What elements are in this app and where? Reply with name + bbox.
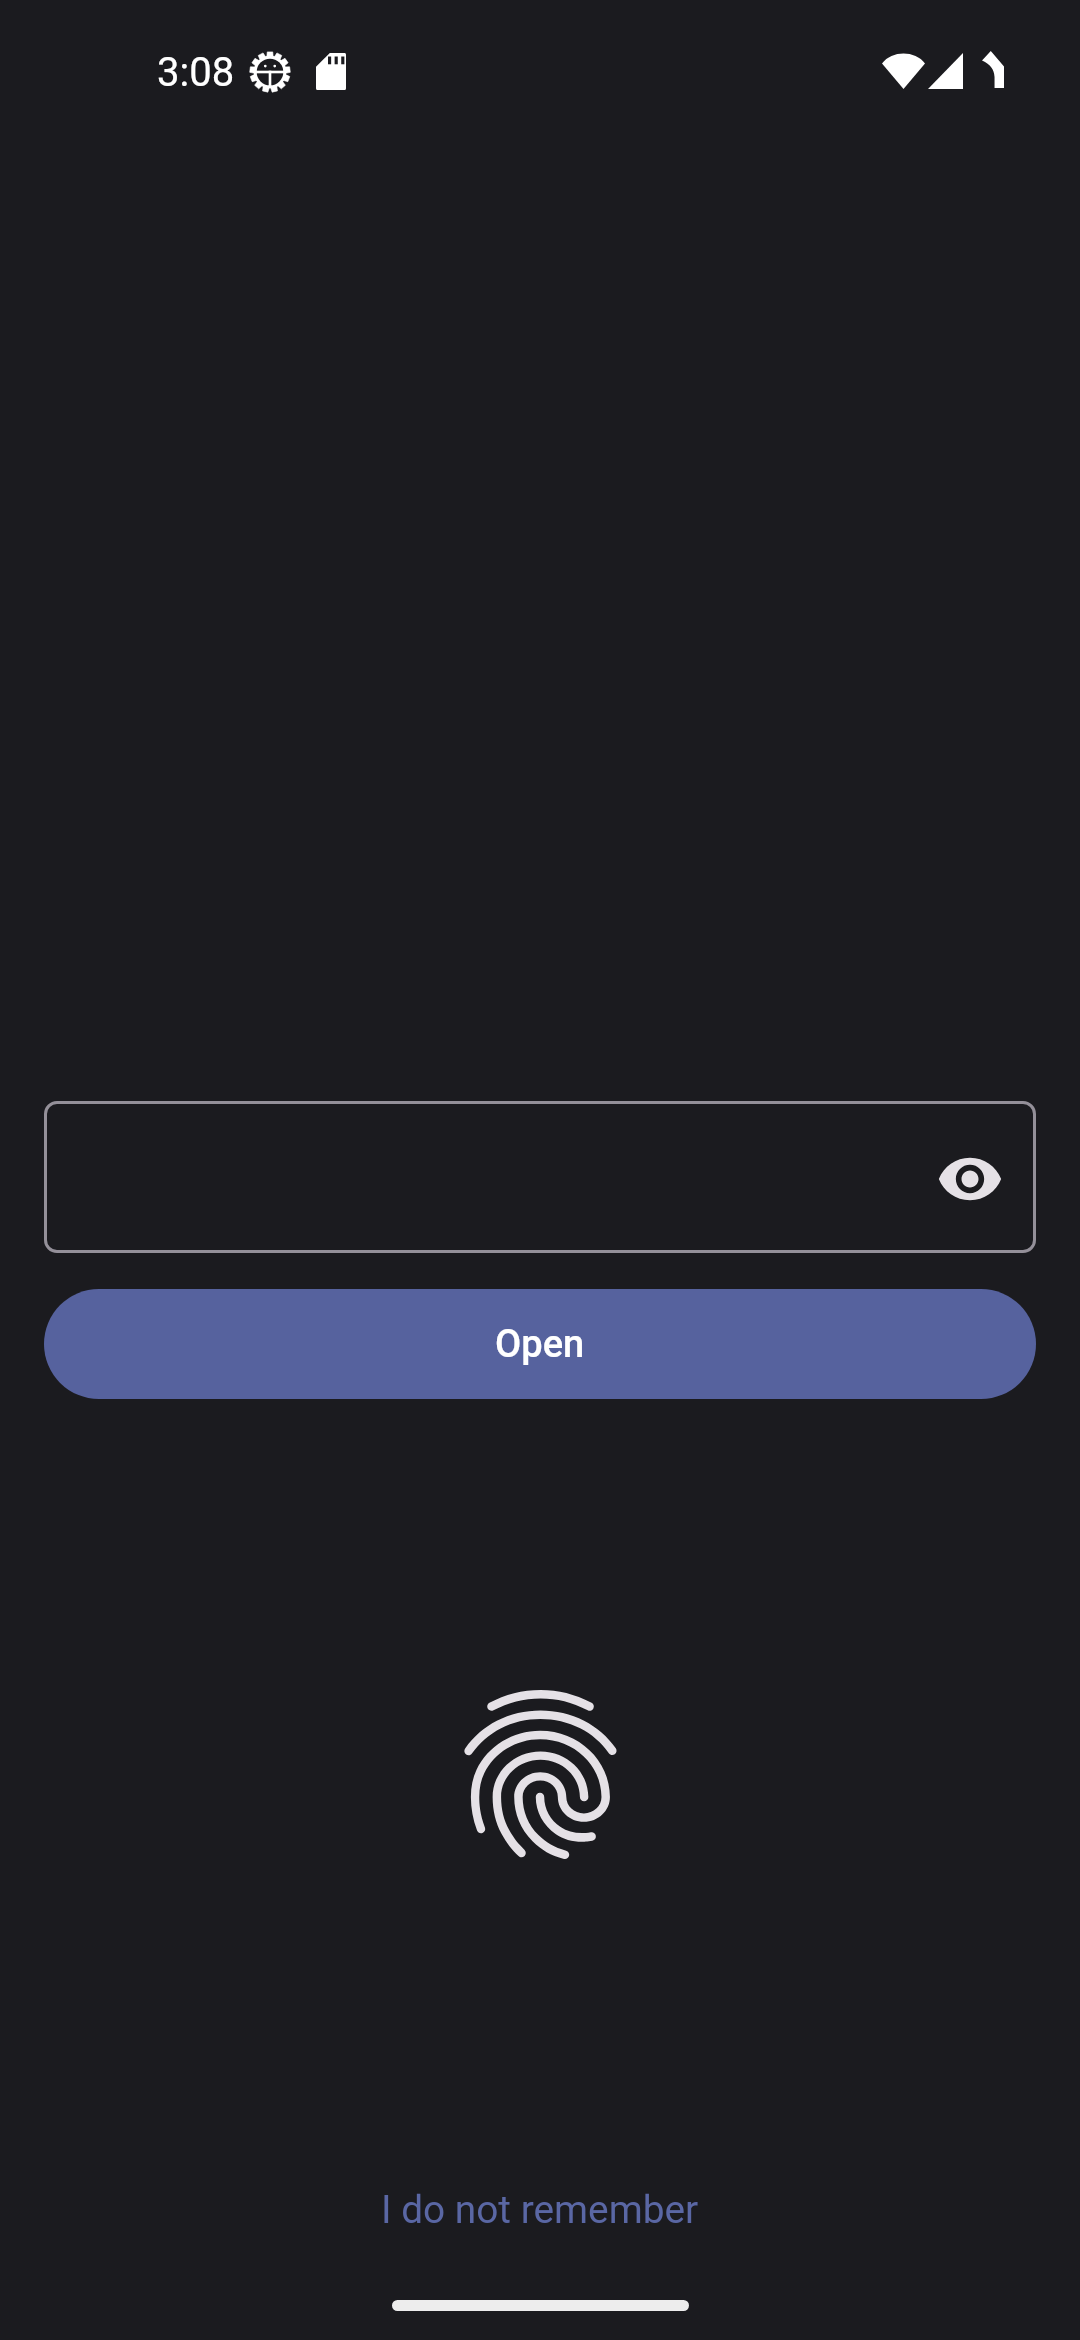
staticText: I do not remember [381,2187,699,2232]
button[interactable]: Open [44,1289,1036,1399]
staticText: Open [495,1322,585,1367]
button[interactable]: Unlock with fingerprint [439,1673,642,1876]
button[interactable]: I do not remember [363,2181,717,2238]
button[interactable]: Show password [915,1124,1025,1234]
staticText: 3:08 [157,49,235,96]
button[interactable]: Show password [44,1101,1036,1253]
